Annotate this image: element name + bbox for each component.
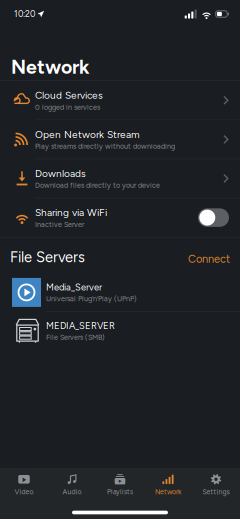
- staticText: Download files directly to your device: [35, 181, 160, 190]
- staticText: Network: [155, 488, 181, 496]
- staticText: Connect: [188, 252, 230, 265]
- staticText: File Servers (SMB): [46, 333, 105, 341]
- staticText: Settings: [202, 488, 229, 496]
- staticText: Cloud Services: [35, 89, 103, 101]
- staticText: Play streams directly without downloadin…: [35, 142, 175, 150]
- staticText: Playlists: [107, 488, 133, 496]
- button[interactable]: MEDIA_SERVER: [0, 312, 240, 350]
- staticText: Audio: [62, 488, 81, 496]
- button[interactable]: Connect: [188, 252, 230, 266]
- button[interactable]: Video: [0, 474, 48, 506]
- staticText: File Servers: [10, 248, 85, 266]
- staticText: Media_Server: [46, 282, 102, 293]
- staticText: MEDIA_SERVER: [46, 320, 115, 331]
- button[interactable]: Network: [144, 474, 192, 506]
- staticText: Inactive Server: [35, 220, 84, 229]
- staticText: 10:20: [14, 9, 35, 19]
- staticText: Open Network Stream: [35, 128, 140, 140]
- staticText: Universal Plug'n'Play (UPnP): [46, 294, 137, 303]
- button[interactable]: Media_Server: [0, 273, 240, 311]
- button[interactable]: Sharing via WiFi: [198, 208, 229, 227]
- staticText: Sharing via WiFi: [35, 206, 107, 219]
- staticText: Network: [11, 55, 89, 78]
- staticText: 0 logged in services: [35, 103, 100, 111]
- staticText: Video: [14, 488, 33, 496]
- button[interactable]: Downloads: [0, 159, 240, 198]
- button[interactable]: Open Network Stream: [0, 120, 240, 159]
- button[interactable]: Cloud Services: [0, 81, 240, 120]
- button[interactable]: Playlists: [96, 474, 144, 506]
- staticText: Downloads: [35, 167, 86, 180]
- button[interactable]: Audio: [48, 474, 96, 506]
- button[interactable]: Settings: [192, 474, 240, 506]
